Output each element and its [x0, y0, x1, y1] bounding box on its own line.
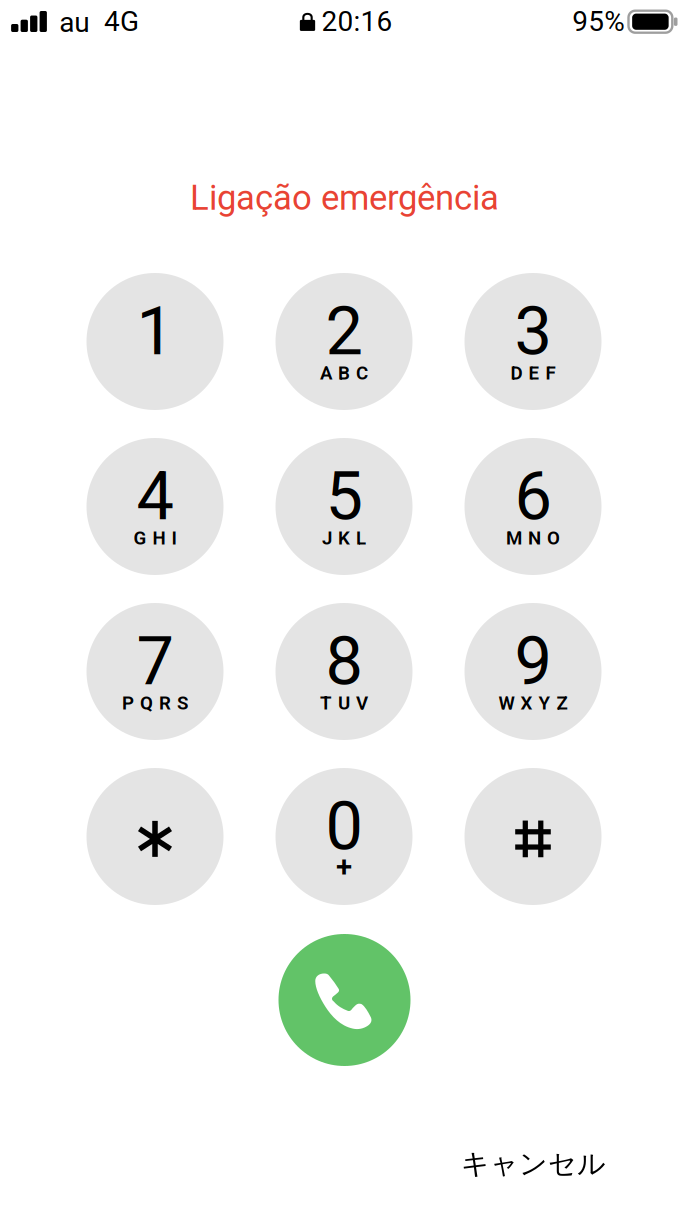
button[interactable]: 2 [275, 273, 412, 410]
button[interactable]: 7 [86, 603, 223, 740]
staticText: WXYZ [498, 692, 567, 714]
staticText: au [59, 6, 89, 39]
staticText: PQRS [122, 692, 188, 714]
button[interactable]: 9 [464, 603, 601, 740]
staticText: 20:16 [321, 5, 392, 38]
staticText: DEF [510, 362, 555, 384]
button[interactable]: Pound [464, 768, 601, 905]
staticText: 0 [325, 787, 362, 865]
button[interactable]: Star [86, 768, 223, 905]
staticText: Ligação emergência [190, 178, 499, 218]
button[interactable]: 5 [275, 438, 412, 575]
button[interactable]: 6 [464, 438, 601, 575]
staticText: 95% [572, 5, 625, 38]
button[interactable]: キャンセル [461, 1147, 606, 1181]
staticText: 2 [325, 292, 362, 370]
staticText: 1 [136, 292, 173, 370]
button[interactable]: 8 [275, 603, 412, 740]
button[interactable]: 3 [464, 273, 601, 410]
staticText: 7 [136, 622, 173, 700]
button[interactable]: 1 [86, 273, 223, 410]
staticText: TUV [320, 692, 368, 714]
staticText: GHI [133, 527, 176, 549]
staticText: 6 [514, 457, 551, 535]
staticText: JKL [322, 527, 366, 549]
staticText: 4G [104, 5, 139, 38]
staticText: 3 [514, 292, 551, 370]
button[interactable]: Call [278, 934, 410, 1066]
staticText: 5 [325, 457, 362, 535]
button[interactable]: 0 [275, 768, 412, 905]
staticText: 9 [514, 622, 551, 700]
staticText: 4 [136, 457, 173, 535]
button[interactable]: 4 [86, 438, 223, 575]
staticText: + [336, 849, 352, 884]
staticText: ABC [320, 362, 368, 384]
staticText: 8 [325, 622, 362, 700]
staticText: キャンセル [461, 1147, 606, 1181]
staticText: MNO [506, 527, 560, 549]
